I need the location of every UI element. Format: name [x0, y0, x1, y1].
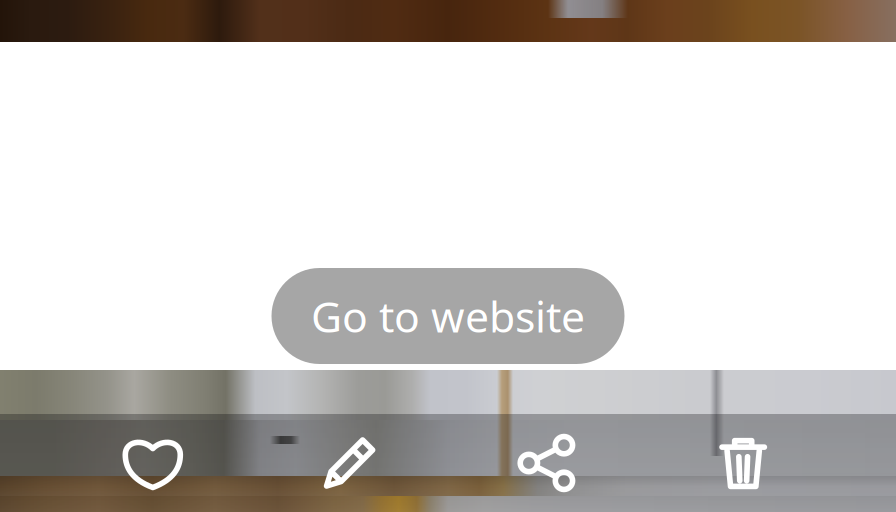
button[interactable]: Favourite — [109, 414, 197, 512]
button[interactable]: Share — [502, 414, 590, 512]
button[interactable]: Edit — [306, 414, 394, 512]
button[interactable]: Go to website — [271, 268, 624, 364]
staticText: Go to website — [311, 288, 585, 344]
button[interactable]: Delete — [699, 414, 787, 512]
